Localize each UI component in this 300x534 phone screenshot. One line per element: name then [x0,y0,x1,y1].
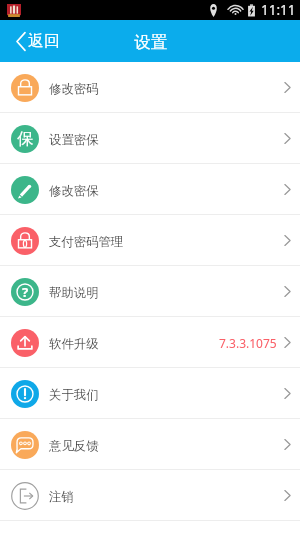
staticText: 修改密保 [49,183,99,199]
button[interactable]: 修改密保 [0,164,300,215]
staticText: 7.3.3.1075 [219,335,277,351]
staticText: 意见反馈 [49,438,99,454]
button[interactable]: 保 [0,113,300,164]
staticText: 设置 [134,32,167,53]
button[interactable]: 返回 [16,31,60,52]
button[interactable]: 修改密码 [0,62,300,113]
button[interactable]: 意见反馈 [0,419,300,470]
button[interactable]: ? [0,266,300,317]
staticText: ? [22,283,29,301]
staticText: 软件升级 [49,336,99,352]
button[interactable]: 关于我们 [0,368,300,419]
staticText: 修改密码 [49,81,99,97]
button[interactable]: 软件升级 [0,317,300,368]
staticText: 支付密码管理 [49,234,124,250]
button[interactable]: 支付密码管理 [0,215,300,266]
staticText: 注销 [49,489,74,505]
staticText: 关于我们 [49,387,99,403]
staticText: 返回 [28,31,60,51]
staticText: 11:11 [261,1,296,19]
staticText: 设置密保 [49,132,99,148]
staticText: 保 [17,129,33,149]
button[interactable]: 注销 [0,470,300,521]
staticText: 帮助说明 [49,285,99,301]
